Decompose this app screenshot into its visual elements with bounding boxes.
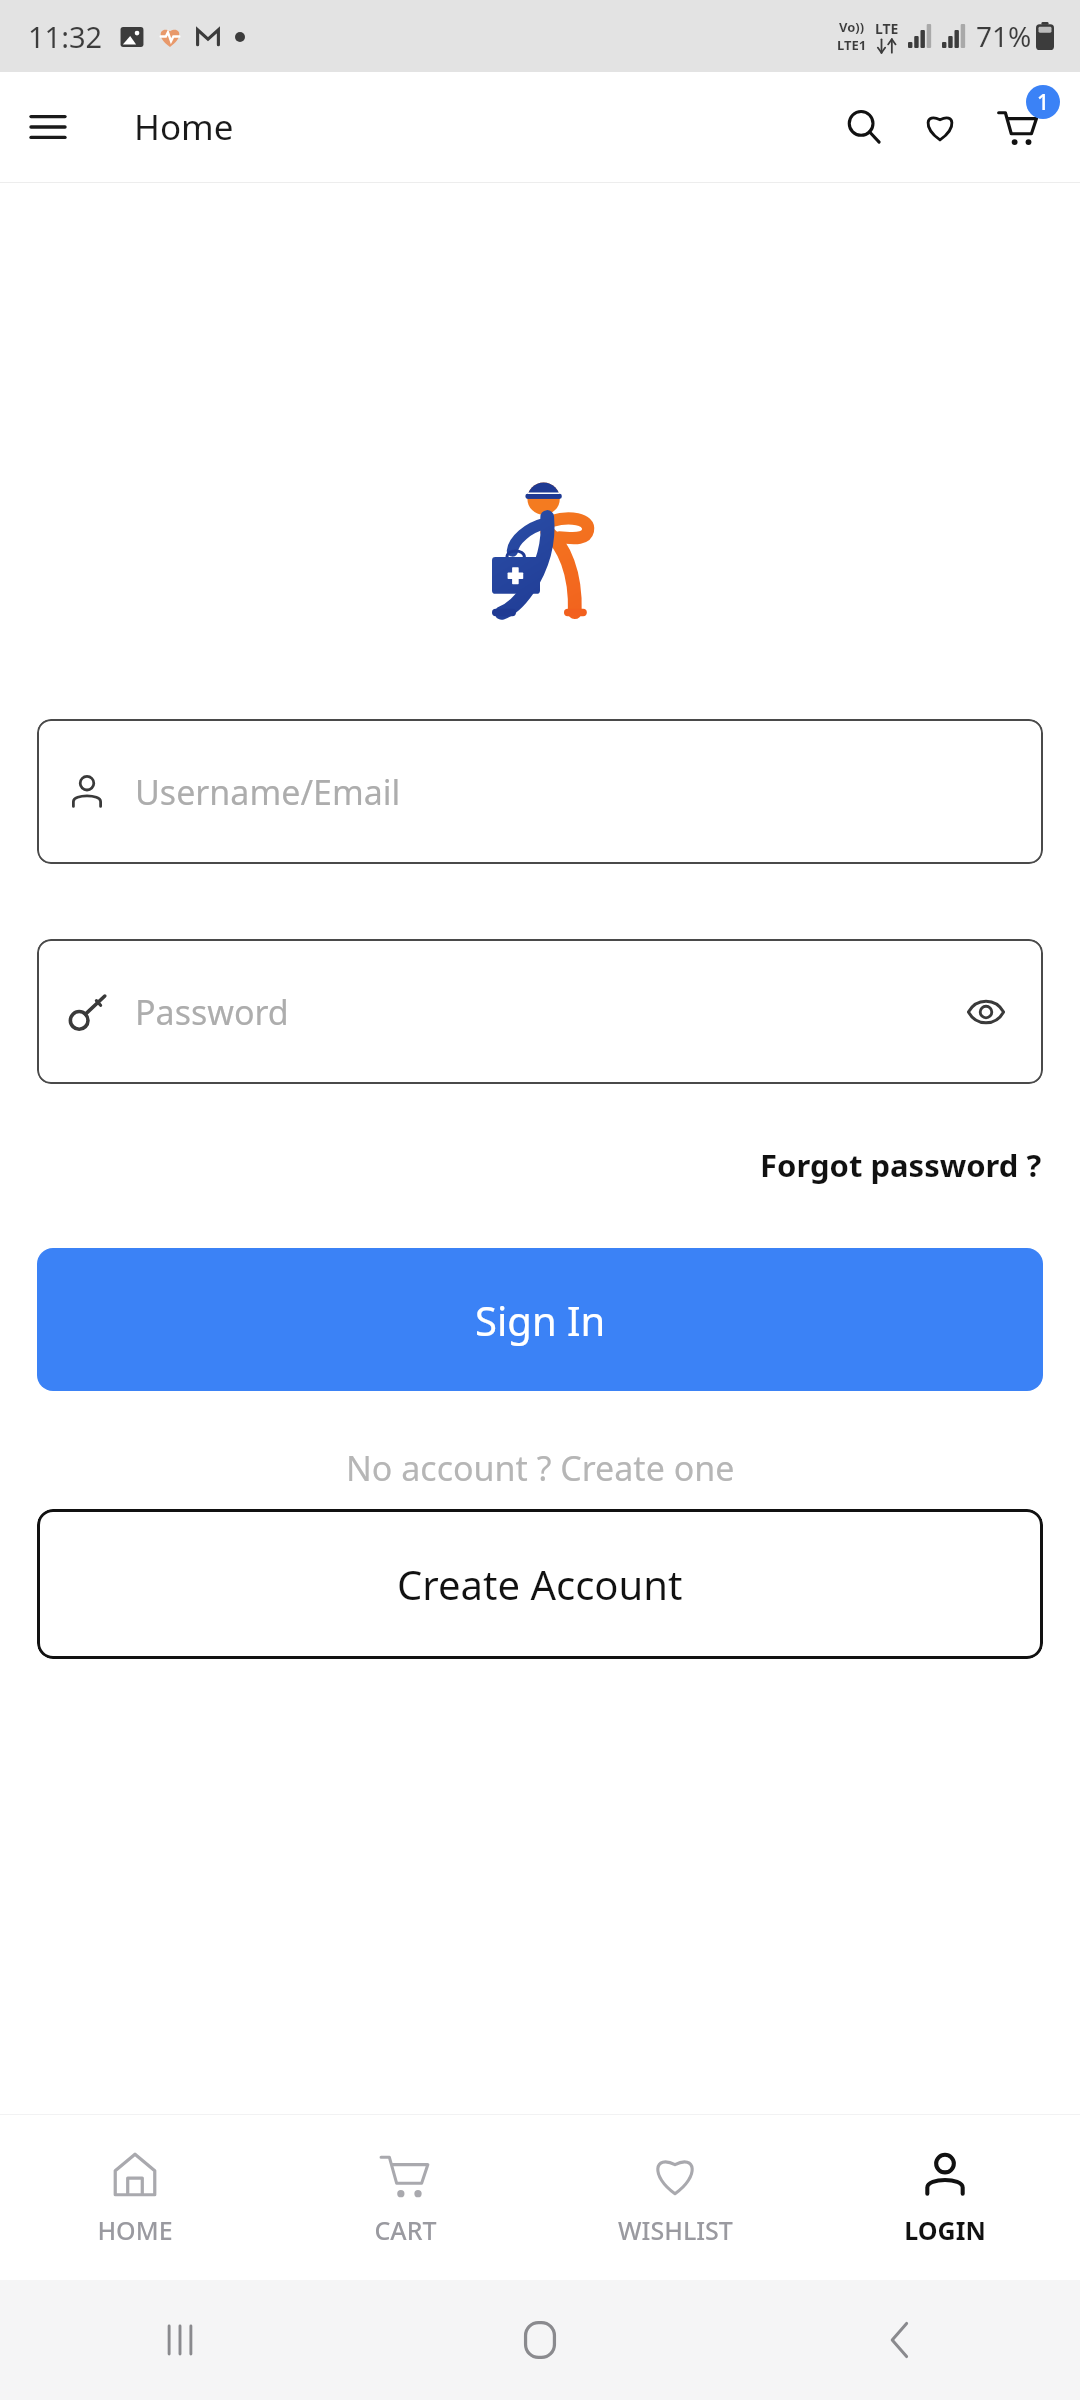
button[interactable]: Password	[37, 939, 1043, 1084]
button[interactable]: Create Account	[37, 1509, 1043, 1659]
button[interactable]: Username/Email	[37, 719, 1043, 864]
button[interactable]: No account ? Create one	[0, 1441, 1080, 1495]
staticText: LTE1	[837, 36, 867, 54]
button[interactable]: LOGIN	[810, 2115, 1080, 2280]
button[interactable]: Back	[720, 2280, 1080, 2400]
button[interactable]: CART	[270, 2115, 540, 2280]
staticText: WISHLIST	[618, 2213, 733, 2247]
staticText: CART	[374, 2213, 437, 2247]
button[interactable]: Forgot password ?	[752, 1136, 1050, 1194]
staticText: Create Account	[397, 1557, 683, 1611]
staticText: Vo))	[839, 18, 865, 36]
button[interactable]: Wishlist	[902, 89, 978, 165]
button[interactable]: Show password	[959, 985, 1013, 1039]
staticText: Home	[134, 103, 234, 151]
staticText: 11:32	[28, 17, 103, 56]
button[interactable]: WISHLIST	[540, 2115, 810, 2280]
staticText: No account ? Create one	[346, 1445, 735, 1491]
button[interactable]: Cart, 1 item	[978, 87, 1058, 167]
staticText: Password	[135, 989, 959, 1035]
button[interactable]: Home	[360, 2280, 720, 2400]
button[interactable]: Recent apps	[0, 2280, 360, 2400]
button[interactable]: Search	[826, 89, 902, 165]
staticText: 71%	[976, 17, 1032, 55]
button[interactable]: HOME	[0, 2115, 270, 2280]
staticText: HOME	[97, 2213, 173, 2247]
staticText: LTE	[875, 19, 899, 38]
staticText: Username/Email	[135, 769, 401, 815]
staticText: Sign In	[475, 1293, 606, 1347]
staticText: 1	[1037, 88, 1050, 117]
button[interactable]: Sign In	[37, 1248, 1043, 1391]
button[interactable]: Open navigation menu	[20, 99, 76, 155]
staticText: Forgot password ?	[760, 1144, 1042, 1186]
staticText: LOGIN	[904, 2213, 986, 2247]
